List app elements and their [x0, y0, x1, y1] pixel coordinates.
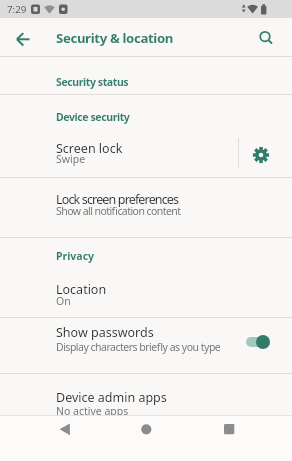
staticText: Lock screen preferences: [56, 191, 179, 208]
staticText: No active apps: [56, 404, 129, 418]
button[interactable]: [248, 22, 278, 52]
staticText: On: [56, 294, 71, 308]
staticText: Security status: [56, 75, 129, 89]
staticText: Screen lock: [56, 140, 123, 157]
staticText: Privacy: [56, 249, 95, 263]
button[interactable]: [51, 415, 79, 443]
staticText: Display characters briefly as you type: [56, 340, 221, 354]
staticText: 7:29: [7, 3, 27, 16]
button[interactable]: Screen lock: [0, 127, 292, 172]
staticText: Device admin apps: [56, 389, 167, 406]
button[interactable]: [6, 22, 36, 52]
button[interactable]: [247, 141, 275, 169]
staticText: Location: [56, 281, 107, 298]
button[interactable]: Device admin apps: [0, 378, 292, 415]
staticText: Show all notification content: [56, 204, 181, 218]
staticText: Security & location: [56, 29, 174, 47]
button[interactable]: Location: [0, 270, 292, 317]
button[interactable]: [132, 415, 160, 443]
button[interactable]: [215, 415, 243, 443]
button[interactable]: Lock screen preferences: [0, 178, 292, 236]
staticText: Show passwords: [56, 324, 154, 341]
button[interactable]: Show passwords: [0, 318, 292, 373]
staticText: Swipe: [56, 152, 86, 166]
staticText: Device security: [56, 110, 130, 124]
